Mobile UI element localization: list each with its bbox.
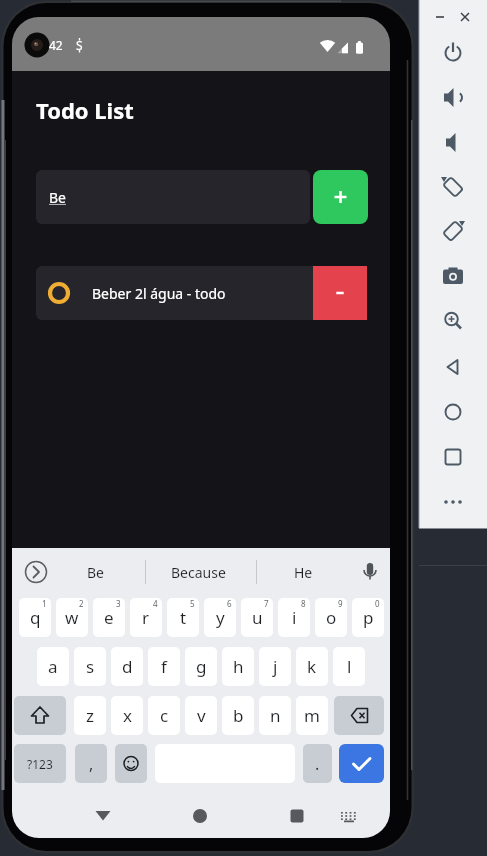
staticText: 3 [116,598,121,609]
button[interactable]: Be [36,170,310,224]
staticText: p [363,606,374,629]
staticText: S [76,37,83,53]
button[interactable]: Be [65,552,125,592]
button[interactable] [337,804,361,828]
staticText: y [216,606,225,629]
staticText: 4 [153,598,158,609]
button[interactable]: v [185,696,217,735]
button[interactable] [313,170,368,224]
button[interactable] [188,804,212,828]
button[interactable]: s [74,647,106,686]
button[interactable] [334,696,384,735]
button[interactable]: , [75,744,107,783]
staticText: 42 [49,37,63,53]
staticText: Beber 2l água - todo [92,284,226,303]
staticText: r [142,606,150,629]
button[interactable]: r [130,598,162,637]
button[interactable] [421,169,485,205]
staticText: v [197,704,206,727]
button[interactable]: e [93,598,125,637]
button[interactable]: He [273,552,333,592]
button[interactable]: d [111,647,143,686]
staticText: 1 [42,598,47,609]
staticText: 5 [190,598,195,609]
button[interactable]: u [241,598,273,637]
button[interactable] [313,266,367,320]
button[interactable] [421,439,485,475]
button[interactable]: c [148,696,180,735]
staticText: t [180,606,187,629]
button[interactable]: z [74,696,106,735]
staticText: . [315,753,320,775]
button[interactable] [22,558,50,586]
button[interactable]: b [222,696,254,735]
button[interactable]: m [296,696,328,735]
staticText: 0 [375,598,380,609]
button[interactable]: y [204,598,236,637]
staticText: c [160,704,169,727]
staticText: e [104,606,114,629]
button[interactable] [285,804,309,828]
staticText: w [65,606,79,629]
staticText: d [122,655,133,678]
button[interactable]: x [111,696,143,735]
staticText: s [86,655,95,678]
button[interactable] [115,744,147,783]
button[interactable] [421,124,485,160]
button[interactable] [421,213,485,249]
button[interactable] [421,484,485,520]
staticText: b [233,704,244,727]
button[interactable] [421,303,485,339]
staticText: ?123 [27,756,53,772]
button[interactable] [421,79,485,115]
staticText: x [123,704,132,727]
staticText: 8 [301,598,306,609]
staticText: o [326,606,337,629]
button[interactable]: a [37,647,69,686]
staticText: 2 [79,598,84,609]
button[interactable] [421,394,485,430]
button[interactable]: n [259,696,291,735]
staticText: 9 [338,598,343,609]
button[interactable]: p [352,598,384,637]
button[interactable]: i [278,598,310,637]
button[interactable]: t [167,598,199,637]
staticText: He [294,563,313,582]
staticText: m [304,704,320,727]
staticText: k [307,655,317,678]
staticText: Be [87,563,104,582]
staticText: h [233,655,244,678]
staticText: a [48,655,58,678]
button[interactable] [14,696,66,735]
button[interactable]: f [148,647,180,686]
button[interactable]: o [315,598,347,637]
button[interactable]: l [333,647,365,686]
staticText: Todo List [36,95,134,125]
staticText: q [30,606,41,629]
button[interactable]: g [185,647,217,686]
button[interactable]: j [259,647,291,686]
button[interactable] [91,804,115,828]
button[interactable]: w [56,598,88,637]
button[interactable]: Beber 2l água - todo [36,266,367,320]
button[interactable]: h [222,647,254,686]
button[interactable] [421,349,485,385]
staticText: i [292,606,297,629]
button[interactable] [421,258,485,294]
button[interactable] [339,744,384,783]
staticText: f [161,655,167,678]
staticText: 7 [264,598,269,609]
button[interactable]: q [19,598,51,637]
button[interactable]: ?123 [14,744,66,783]
button[interactable]: . [303,744,332,783]
button[interactable] [421,34,485,70]
button[interactable]: Because [158,552,238,592]
staticText: Be [49,188,66,207]
staticText: j [273,655,278,678]
staticText: Because [171,563,226,582]
staticText: l [347,655,352,678]
staticText: 6 [227,598,232,609]
staticText: z [86,704,94,727]
button[interactable]: k [296,647,328,686]
